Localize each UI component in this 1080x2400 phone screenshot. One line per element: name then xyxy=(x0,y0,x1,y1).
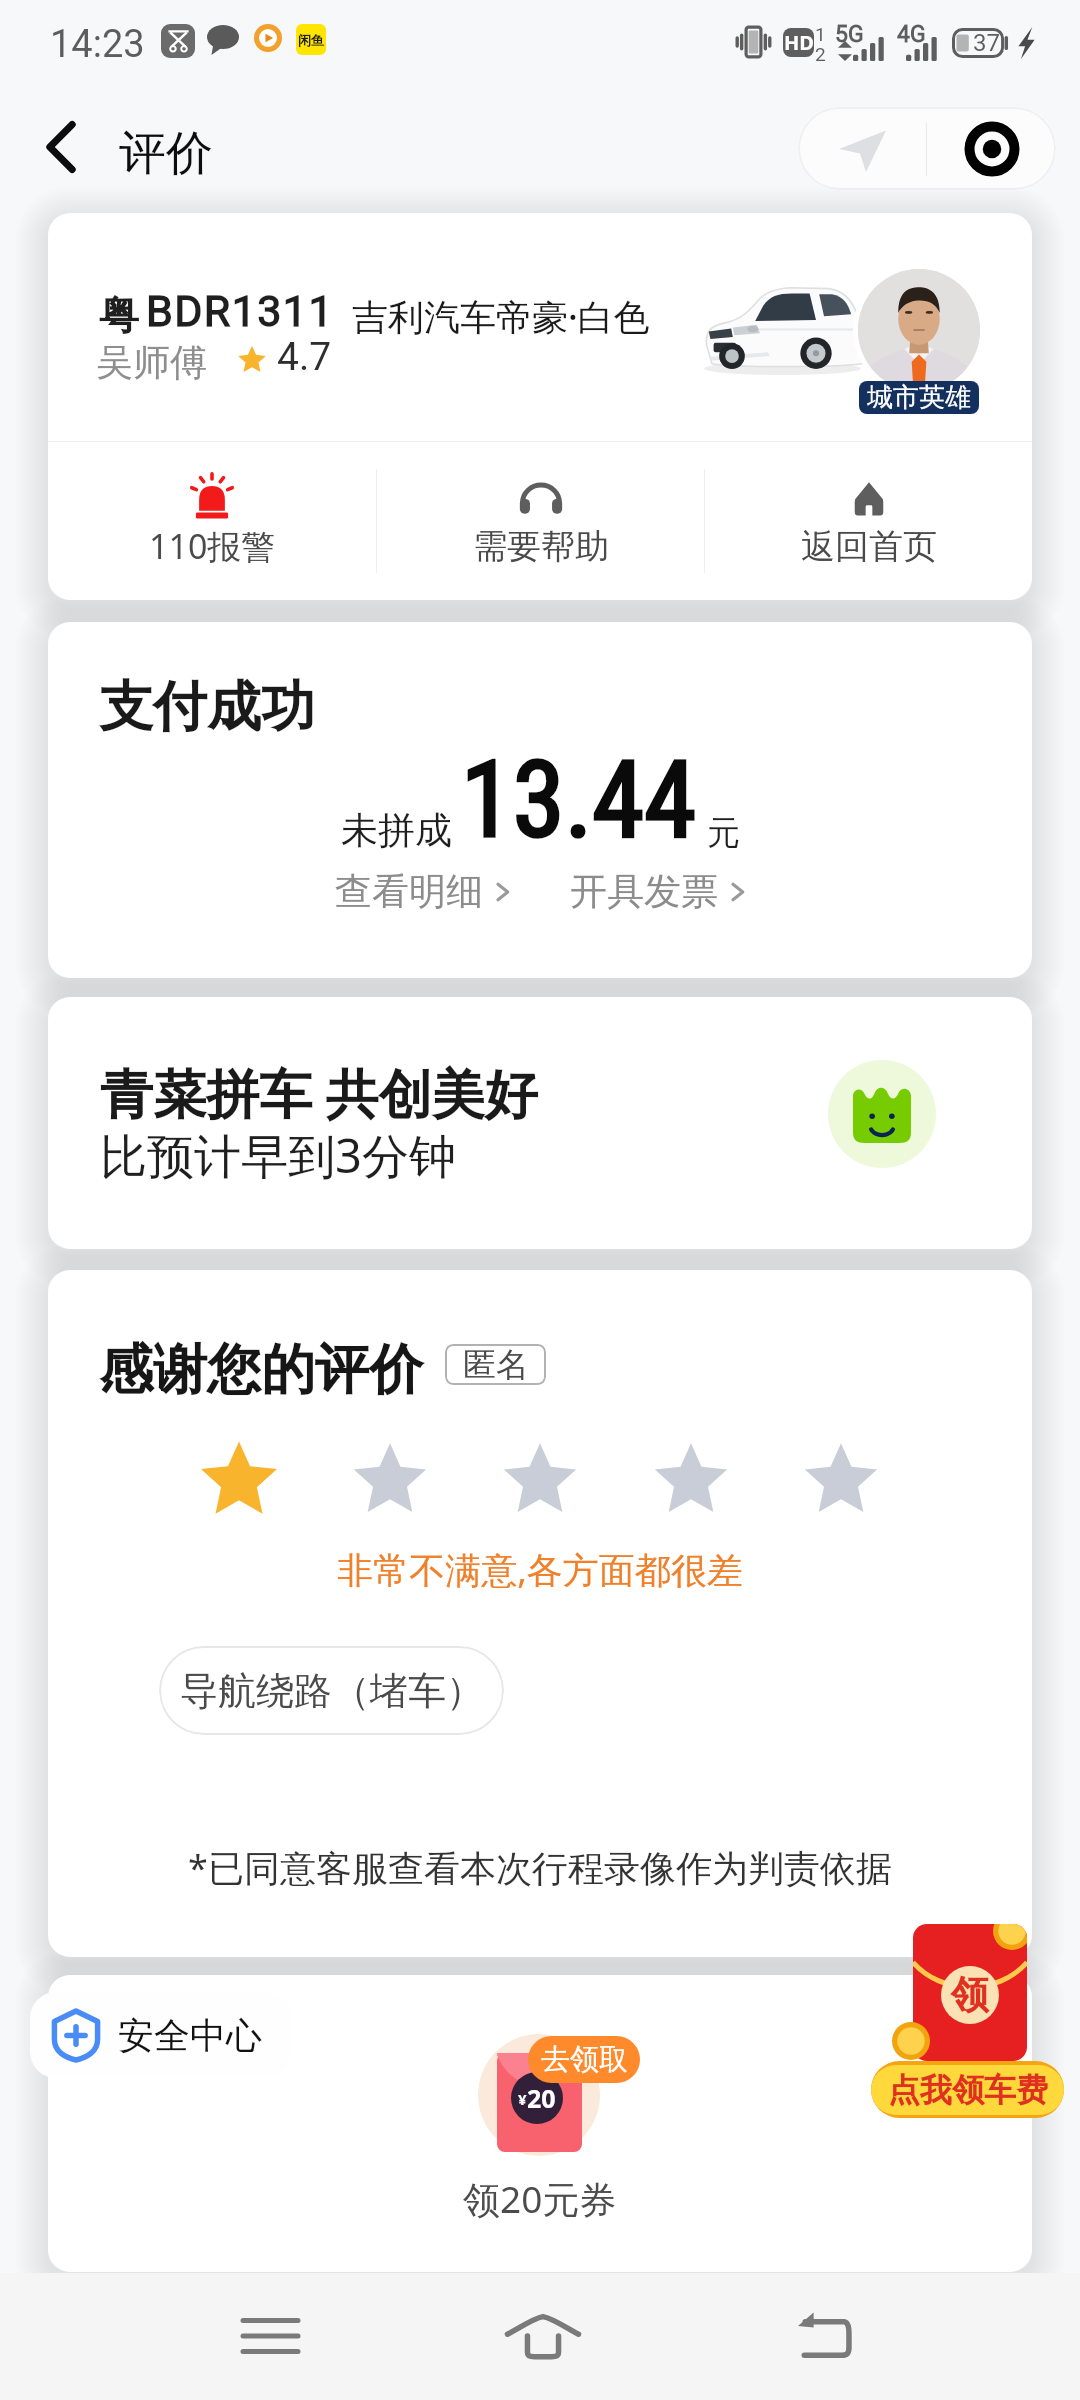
staticText: 吴师傅 xyxy=(96,339,207,386)
staticText: 吉利汽车帝豪·白色 xyxy=(352,292,650,341)
staticText: 14:23 xyxy=(50,22,145,67)
staticText: 13.44 xyxy=(461,739,697,862)
button[interactable]: Back xyxy=(764,2273,884,2393)
staticText: *已同意客服查看本次行程录像作为判责依据 xyxy=(48,1843,1032,1892)
button[interactable]: Home xyxy=(483,2273,603,2393)
staticText: 非常不满意,各方面都很差 xyxy=(48,1545,1032,1594)
staticText: 粤 xyxy=(99,290,139,340)
staticText: 青菜拼车 共创美好 xyxy=(100,1056,538,1128)
button[interactable]: Rate 3 star xyxy=(492,1431,588,1527)
staticText: 比预计早到3分钟 xyxy=(100,1123,456,1187)
staticText: 需要帮助 xyxy=(473,525,609,568)
button[interactable]: 查看明细 xyxy=(329,862,516,921)
staticText: 导航绕路（堵车） xyxy=(180,1667,484,1715)
staticText: 城市英雄 xyxy=(867,381,971,414)
button[interactable]: 导航绕路（堵车） xyxy=(159,1646,504,1735)
staticText: ¥ xyxy=(518,2089,527,2109)
button[interactable]: Recents xyxy=(210,2273,330,2393)
button[interactable]: Navigate xyxy=(798,107,926,190)
button[interactable]: Rate 5 star xyxy=(793,1431,889,1527)
staticText: 支付成功 xyxy=(99,673,315,741)
button[interactable]: 安全中心 xyxy=(30,1992,291,2078)
button[interactable]: Rate 2 star xyxy=(342,1431,438,1527)
staticText: BDR1311 xyxy=(146,286,334,336)
staticText: 领 xyxy=(951,1971,989,2019)
staticText: 闲鱼 xyxy=(298,32,324,48)
staticText: 去领取 xyxy=(541,2041,628,2078)
button[interactable]: 110报警 xyxy=(48,442,376,600)
staticText: 2 xyxy=(815,43,826,65)
staticText: 1 xyxy=(815,23,826,45)
staticText: 匿名 xyxy=(463,1344,529,1385)
button[interactable]: Record trip xyxy=(927,107,1056,190)
button[interactable]: Back xyxy=(25,111,97,183)
button[interactable]: 返回首页 xyxy=(705,442,1032,600)
button[interactable]: 点我领车费 xyxy=(871,2061,1064,2118)
staticText: 110报警 xyxy=(149,523,276,569)
button[interactable]: 匿名 xyxy=(445,1344,546,1385)
button[interactable]: 去领取 xyxy=(528,2036,640,2083)
button[interactable]: 需要帮助 xyxy=(377,442,704,600)
staticText: HD xyxy=(784,29,814,56)
staticText: 37 xyxy=(973,29,1000,57)
button[interactable]: Get 20 yuan coupon xyxy=(478,2034,600,2156)
button[interactable]: Claim ride fee red packet xyxy=(913,1924,1027,2061)
button[interactable]: Rate 1 star xyxy=(191,1431,287,1527)
staticText: 4.7 xyxy=(277,334,332,380)
staticText: 查看明细 xyxy=(335,868,483,915)
staticText: 20 xyxy=(527,2081,556,2115)
staticText: 评价 xyxy=(119,124,213,183)
staticText: 领20元券 xyxy=(463,2173,617,2224)
staticText: 安全中心 xyxy=(118,2013,262,2058)
staticText: 4G xyxy=(897,21,926,48)
staticText: 返回首页 xyxy=(801,525,937,568)
staticText: 感谢您的评价 xyxy=(99,1336,423,1404)
button[interactable]: Rate 4 star xyxy=(643,1431,739,1527)
button[interactable]: 开具发票 xyxy=(564,862,751,921)
staticText: 开具发票 xyxy=(570,868,718,915)
button[interactable]: 青菜拼车 共创美好 xyxy=(48,997,1032,1249)
staticText: 未拼成 xyxy=(341,807,452,854)
staticText: 元 xyxy=(707,812,740,854)
staticText: 点我领车费 xyxy=(888,2070,1048,2110)
staticText: 5G xyxy=(835,21,864,48)
